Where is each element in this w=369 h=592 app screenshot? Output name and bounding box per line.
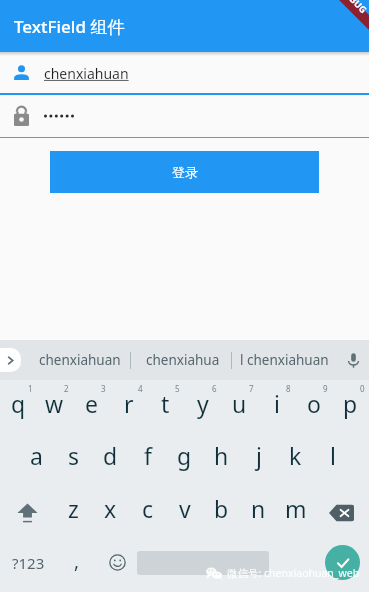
button[interactable]: b — [203, 486, 240, 539]
button[interactable]: a — [18, 433, 55, 486]
staticText: p — [343, 388, 358, 419]
button[interactable]: More suggestions — [0, 348, 21, 372]
staticText: d — [103, 440, 118, 471]
button[interactable]: Space — [137, 551, 269, 575]
staticText: h — [214, 440, 229, 471]
staticText: v — [179, 493, 191, 524]
button[interactable]: h — [203, 433, 240, 486]
staticText: 登录 — [172, 164, 198, 180]
staticText: m — [285, 493, 307, 524]
staticText: ?123 — [12, 553, 45, 573]
staticText: 微信号: chenxiaohuan_web — [227, 566, 360, 580]
button[interactable]: c — [129, 486, 166, 539]
staticText: chenxiahuan — [39, 351, 121, 369]
staticText: s — [68, 440, 80, 471]
button[interactable]: w — [36, 380, 73, 433]
button[interactable]: l — [314, 433, 351, 486]
button[interactable] — [0, 101, 369, 138]
staticText: , — [74, 548, 80, 574]
staticText: f — [144, 440, 152, 471]
button[interactable]: e — [73, 380, 110, 433]
button[interactable]: chenxiahua — [134, 340, 231, 380]
button[interactable]: i — [258, 380, 295, 433]
button[interactable]: ?123 — [0, 539, 57, 592]
button[interactable]: y — [184, 380, 221, 433]
staticText: l — [330, 440, 336, 471]
button[interactable]: t — [147, 380, 184, 433]
staticText: 6 — [212, 383, 217, 394]
button[interactable]: v — [166, 486, 203, 539]
button[interactable]: r — [110, 380, 147, 433]
button[interactable]: z — [55, 486, 92, 539]
staticText: 7 — [249, 383, 254, 394]
staticText: u — [232, 388, 247, 419]
button[interactable]: s — [55, 433, 92, 486]
button[interactable]: , — [57, 539, 97, 592]
button[interactable]: Voice input — [337, 340, 369, 380]
button[interactable]: f — [129, 433, 166, 486]
staticText: 5 — [175, 383, 180, 394]
staticText: q — [11, 388, 26, 419]
button[interactable]: g — [166, 433, 203, 486]
staticText: 8 — [286, 383, 291, 394]
staticText: o — [307, 388, 321, 419]
button[interactable]: o — [295, 380, 332, 433]
staticText: 2 — [64, 383, 69, 394]
button[interactable]: l chenxiahuan — [232, 340, 337, 380]
button[interactable]: d — [92, 433, 129, 486]
button[interactable]: k — [277, 433, 314, 486]
staticText: x — [104, 493, 117, 524]
staticText: DEBUG — [339, 0, 369, 15]
button[interactable]: Backspace — [314, 486, 369, 539]
staticText: 3 — [101, 383, 106, 394]
button[interactable]: Shift — [0, 486, 55, 539]
staticText: a — [30, 440, 43, 471]
staticText: 0 — [360, 383, 365, 394]
staticText: 9 — [323, 383, 328, 394]
staticText: 1 — [28, 383, 33, 394]
staticText: j — [256, 440, 262, 471]
button[interactable]: j — [240, 433, 277, 486]
staticText: chenxiahua — [146, 351, 220, 369]
button[interactable]: q — [0, 380, 36, 433]
button[interactable]: 登录 — [50, 151, 319, 193]
button[interactable]: p — [332, 380, 369, 433]
staticText: k — [289, 440, 302, 471]
button[interactable]: u — [221, 380, 258, 433]
button[interactable]: Enter — [325, 545, 360, 580]
button[interactable]: n — [240, 486, 277, 539]
staticText: b — [214, 493, 229, 524]
button[interactable]: x — [92, 486, 129, 539]
staticText: y — [197, 388, 209, 419]
staticText: i — [274, 388, 280, 419]
button[interactable]: chenxiahuan — [0, 58, 369, 95]
staticText: 4 — [138, 383, 143, 394]
staticText: l chenxiahuan — [240, 351, 329, 369]
staticText: w — [45, 388, 64, 419]
staticText: TextField 组件 — [14, 15, 125, 38]
staticText: e — [85, 388, 98, 419]
staticText: r — [124, 388, 134, 419]
staticText: z — [68, 493, 79, 524]
button[interactable]: chenxiahuan — [30, 340, 130, 380]
staticText: chenxiahuan — [44, 64, 129, 83]
staticText: g — [177, 440, 192, 471]
button[interactable]: Emoji — [97, 539, 137, 592]
button[interactable]: m — [277, 486, 314, 539]
staticText: c — [142, 493, 154, 524]
staticText: t — [161, 388, 170, 419]
staticText: n — [251, 493, 266, 524]
